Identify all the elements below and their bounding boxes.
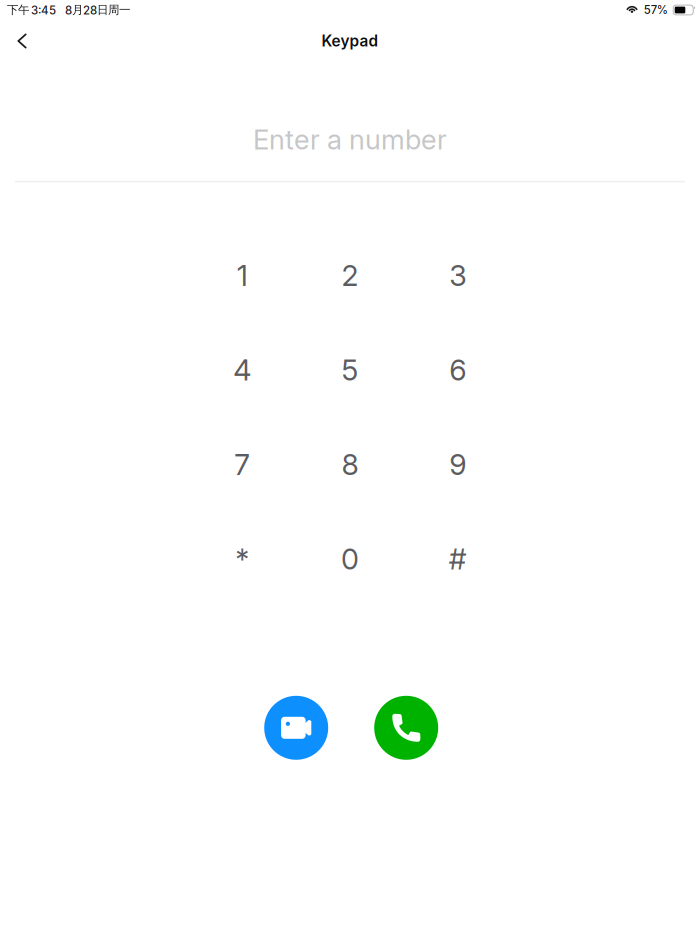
staticText: 6 (449, 353, 466, 387)
button[interactable]: # (422, 528, 494, 590)
staticText: 0 (341, 542, 359, 576)
button[interactable]: Enter a number (0, 62, 700, 187)
button[interactable]: 3 (422, 244, 494, 306)
staticText: * (235, 542, 249, 576)
staticText: 8 (341, 447, 358, 482)
staticText: 3 (449, 258, 466, 293)
staticText: 4 (233, 353, 251, 387)
button[interactable]: Video call (264, 696, 328, 760)
button[interactable]: Call (374, 696, 438, 760)
staticText: 2 (341, 258, 358, 293)
button[interactable]: 6 (422, 339, 494, 401)
staticText: Enter a number (253, 123, 447, 156)
button[interactable]: Back (2, 20, 42, 62)
staticText: 7 (234, 447, 250, 482)
button[interactable]: * (206, 528, 278, 590)
staticText: 1 (237, 258, 248, 293)
staticText: # (449, 542, 467, 576)
button[interactable]: 1 (206, 244, 278, 306)
button[interactable]: 7 (206, 433, 278, 495)
button[interactable]: 0 (314, 528, 386, 590)
staticText: 下午 3:45 8月28日周一 (7, 3, 130, 17)
staticText: 57% (644, 3, 668, 17)
staticText: Keypad (321, 32, 378, 50)
button[interactable]: 5 (314, 339, 386, 401)
button[interactable]: 8 (314, 433, 386, 495)
button[interactable]: 4 (206, 339, 278, 401)
staticText: 9 (449, 447, 466, 482)
button[interactable]: 9 (422, 433, 494, 495)
button[interactable]: 2 (314, 244, 386, 306)
staticText: 5 (341, 353, 358, 387)
